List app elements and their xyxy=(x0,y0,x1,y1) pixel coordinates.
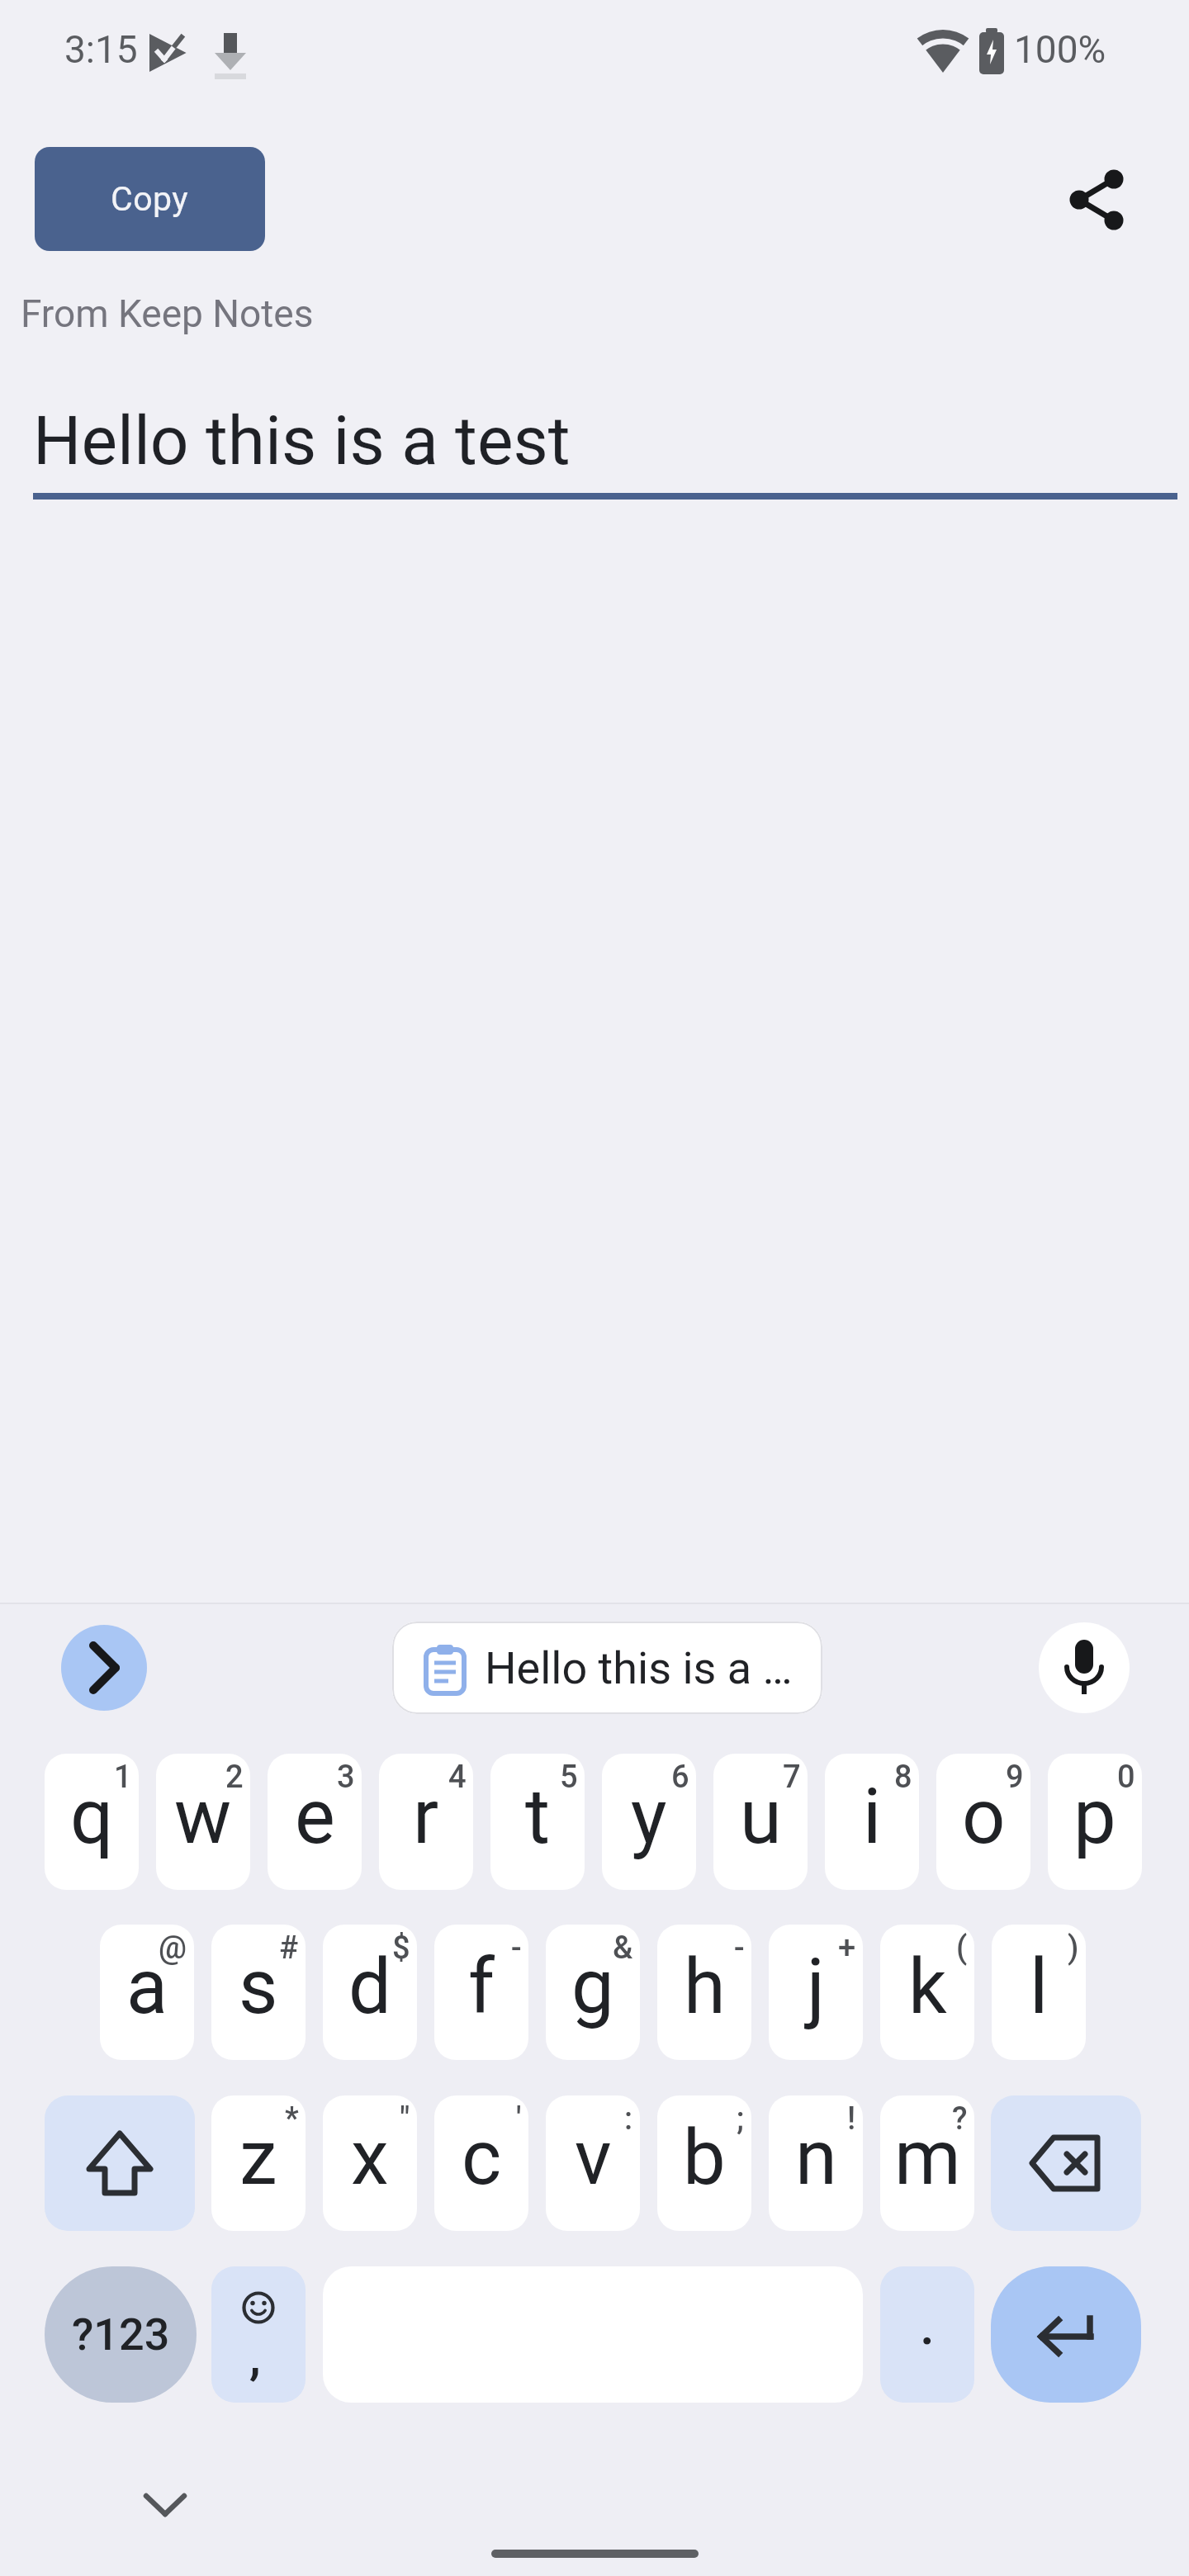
button[interactable]: j xyxy=(769,1925,863,2060)
button[interactable]: q xyxy=(45,1754,139,1890)
button[interactable]: i xyxy=(825,1754,919,1890)
staticText: s xyxy=(239,1943,278,2032)
staticText: ; xyxy=(737,2100,745,2138)
staticText: 4 xyxy=(448,1759,467,1796)
staticText: e xyxy=(295,1773,335,1862)
staticText: y xyxy=(631,1773,667,1862)
button[interactable]: f xyxy=(434,1925,528,2060)
staticText: a xyxy=(126,1943,168,2032)
staticText: ) xyxy=(1068,1930,1079,1967)
staticText: p xyxy=(1073,1773,1116,1862)
staticText: w xyxy=(174,1773,232,1862)
button[interactable]: u xyxy=(713,1754,808,1890)
staticText: . xyxy=(920,2295,935,2357)
button[interactable]: y xyxy=(602,1754,696,1890)
button[interactable] xyxy=(61,1625,147,1711)
button[interactable]: t xyxy=(490,1754,585,1890)
staticText: t xyxy=(525,1773,551,1862)
button[interactable] xyxy=(139,2480,192,2530)
staticText: 2 xyxy=(225,1759,244,1796)
button[interactable]: l xyxy=(992,1925,1086,2060)
staticText: 9 xyxy=(1006,1759,1024,1796)
button[interactable]: h xyxy=(657,1925,751,2060)
staticText: d xyxy=(348,1943,391,2032)
button[interactable]: a xyxy=(100,1925,194,2060)
button[interactable]: s xyxy=(211,1925,306,2060)
staticText: # xyxy=(279,1930,299,1967)
button[interactable] xyxy=(1039,1622,1130,1713)
staticText: r xyxy=(413,1773,439,1862)
button[interactable]: n xyxy=(769,2095,863,2231)
staticText: 6 xyxy=(671,1759,689,1796)
staticText: u xyxy=(740,1773,782,1862)
button[interactable]: x xyxy=(323,2095,417,2231)
button[interactable]: z xyxy=(211,2095,306,2231)
staticText: - xyxy=(511,1930,522,1967)
staticText: Copy xyxy=(111,179,189,219)
staticText: 3 xyxy=(337,1759,355,1796)
button[interactable]: d xyxy=(323,1925,417,2060)
staticText: ? xyxy=(952,2100,968,2138)
staticText: 3:15 xyxy=(64,27,138,72)
staticText: 5 xyxy=(560,1759,578,1796)
staticText: " xyxy=(400,2100,410,2138)
button[interactable] xyxy=(1054,154,1146,246)
staticText: Hello this is a … xyxy=(485,1642,793,1694)
staticText: ! xyxy=(847,2100,856,2138)
button[interactable]: , xyxy=(211,2266,306,2403)
staticText: l xyxy=(1030,1943,1049,2032)
button[interactable]: c xyxy=(434,2095,528,2231)
button[interactable]: Hello this is a … xyxy=(392,1622,822,1714)
button[interactable] xyxy=(991,2266,1141,2403)
button[interactable]: k xyxy=(880,1925,974,2060)
button[interactable]: . xyxy=(880,2266,974,2403)
staticText: : xyxy=(624,2100,633,2138)
staticText: f xyxy=(468,1943,495,2032)
staticText: ?123 xyxy=(72,2308,170,2361)
staticText: 7 xyxy=(783,1759,801,1796)
staticText: g xyxy=(571,1943,614,2032)
staticText: b xyxy=(683,2114,726,2203)
button[interactable]: m xyxy=(880,2095,974,2231)
staticText: k xyxy=(908,1943,947,2032)
staticText: x xyxy=(351,2114,389,2203)
staticText: & xyxy=(613,1930,633,1967)
button[interactable] xyxy=(45,2095,195,2231)
staticText: 0 xyxy=(1117,1759,1135,1796)
staticText: o xyxy=(962,1773,1006,1862)
button[interactable]: b xyxy=(657,2095,751,2231)
staticText: , xyxy=(249,2326,261,2386)
button[interactable]: g xyxy=(546,1925,640,2060)
button[interactable]: v xyxy=(546,2095,640,2231)
staticText: * xyxy=(285,2100,299,2138)
staticText: i xyxy=(863,1773,882,1862)
staticText: n xyxy=(795,2114,837,2203)
staticText: c xyxy=(462,2114,502,2203)
staticText: 1 xyxy=(114,1759,132,1796)
staticText: Hello this is a test xyxy=(33,401,571,481)
staticText: 100% xyxy=(1014,27,1106,72)
staticText: $ xyxy=(392,1930,410,1967)
button[interactable]: ?123 xyxy=(45,2266,197,2403)
button[interactable]: e xyxy=(268,1754,362,1890)
staticText: ( xyxy=(956,1930,968,1967)
button[interactable]: p xyxy=(1048,1754,1142,1890)
staticText: From Keep Notes xyxy=(21,291,314,336)
button[interactable]: w xyxy=(156,1754,250,1890)
staticText: + xyxy=(838,1930,856,1967)
button[interactable]: r xyxy=(379,1754,473,1890)
staticText: z xyxy=(239,2114,277,2203)
button[interactable] xyxy=(991,2095,1141,2231)
staticText: q xyxy=(70,1773,114,1862)
staticText: - xyxy=(734,1930,745,1967)
staticText: v xyxy=(575,2114,612,2203)
staticText: m xyxy=(894,2114,961,2203)
staticText: @ xyxy=(159,1930,187,1967)
staticText: h xyxy=(684,1943,726,2032)
staticText: j xyxy=(807,1943,826,2032)
button[interactable]: o xyxy=(936,1754,1030,1890)
staticText: 8 xyxy=(894,1759,912,1796)
staticText: ' xyxy=(516,2100,522,2138)
button[interactable]: Copy xyxy=(35,147,265,251)
